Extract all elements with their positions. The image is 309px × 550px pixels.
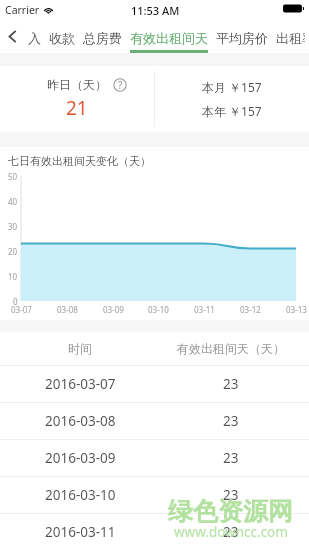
button[interactable]: 2016-03-11	[0, 514, 309, 550]
staticText: 50	[8, 171, 18, 182]
button[interactable]: 2016-03-07	[0, 366, 309, 402]
staticText: 2016-03-11	[45, 523, 116, 541]
staticText: 03-12	[240, 304, 261, 315]
button[interactable]: Back	[0, 20, 24, 53]
staticText: 40	[8, 196, 18, 207]
button[interactable]: 有效出租间天	[126, 20, 212, 53]
button[interactable]: 收款	[45, 20, 79, 53]
staticText: 03-10	[148, 304, 169, 315]
button[interactable]: 平均房价	[212, 20, 272, 53]
staticText: www.downcc.com	[174, 523, 288, 541]
staticText: 2016-03-10	[45, 486, 116, 504]
staticText: 有效出租间天（天）	[177, 341, 285, 356]
staticText: 本月 ￥157	[202, 79, 262, 95]
staticText: 有效出租间天	[130, 30, 208, 46]
staticText: 2016-03-09	[45, 449, 116, 467]
staticText: 21	[66, 95, 88, 121]
button[interactable]: 2016-03-09	[0, 440, 309, 476]
staticText: 03-11	[194, 304, 215, 315]
staticText: 20	[8, 246, 18, 257]
staticText: 0	[13, 296, 18, 307]
staticText: 总房费	[83, 30, 122, 46]
button[interactable]: 出租率	[272, 20, 309, 53]
staticText: 23	[223, 412, 239, 430]
staticText: 昨日（天）	[47, 77, 107, 92]
staticText: ?	[118, 78, 123, 92]
staticText: 23	[223, 523, 239, 541]
button[interactable]: 总房费	[79, 20, 126, 53]
button[interactable]: 2016-03-08	[0, 403, 309, 439]
staticText: 10	[8, 271, 18, 282]
staticText: 时间	[68, 341, 92, 356]
button[interactable]: 入	[24, 20, 45, 53]
staticText: 23	[223, 486, 239, 504]
staticText: 收款	[49, 30, 75, 46]
staticText: 本年 ￥157	[202, 103, 262, 119]
button[interactable]: 昨日（天）	[0, 66, 154, 132]
staticText: 2016-03-07	[45, 375, 116, 393]
staticText: 绿色资源网	[168, 496, 293, 527]
staticText: 03-07	[11, 304, 32, 315]
other: Help	[113, 78, 127, 92]
staticText: 入	[28, 30, 41, 46]
staticText: 11:53 AM	[131, 3, 180, 18]
staticText: 23	[223, 449, 239, 467]
staticText: 30	[8, 221, 18, 232]
staticText: 03-13	[286, 304, 307, 315]
staticText: Carrier	[5, 3, 40, 17]
staticText: 23	[223, 375, 239, 393]
staticText: 03-08	[57, 304, 78, 315]
staticText: 2016-03-08	[45, 412, 116, 430]
staticText: 出租率	[276, 30, 305, 46]
staticText: 平均房价	[216, 30, 268, 46]
staticText: 03-09	[103, 304, 124, 315]
staticText: 七日有效出租间天变化（天）	[8, 154, 151, 168]
button[interactable]: 2016-03-10	[0, 477, 309, 513]
